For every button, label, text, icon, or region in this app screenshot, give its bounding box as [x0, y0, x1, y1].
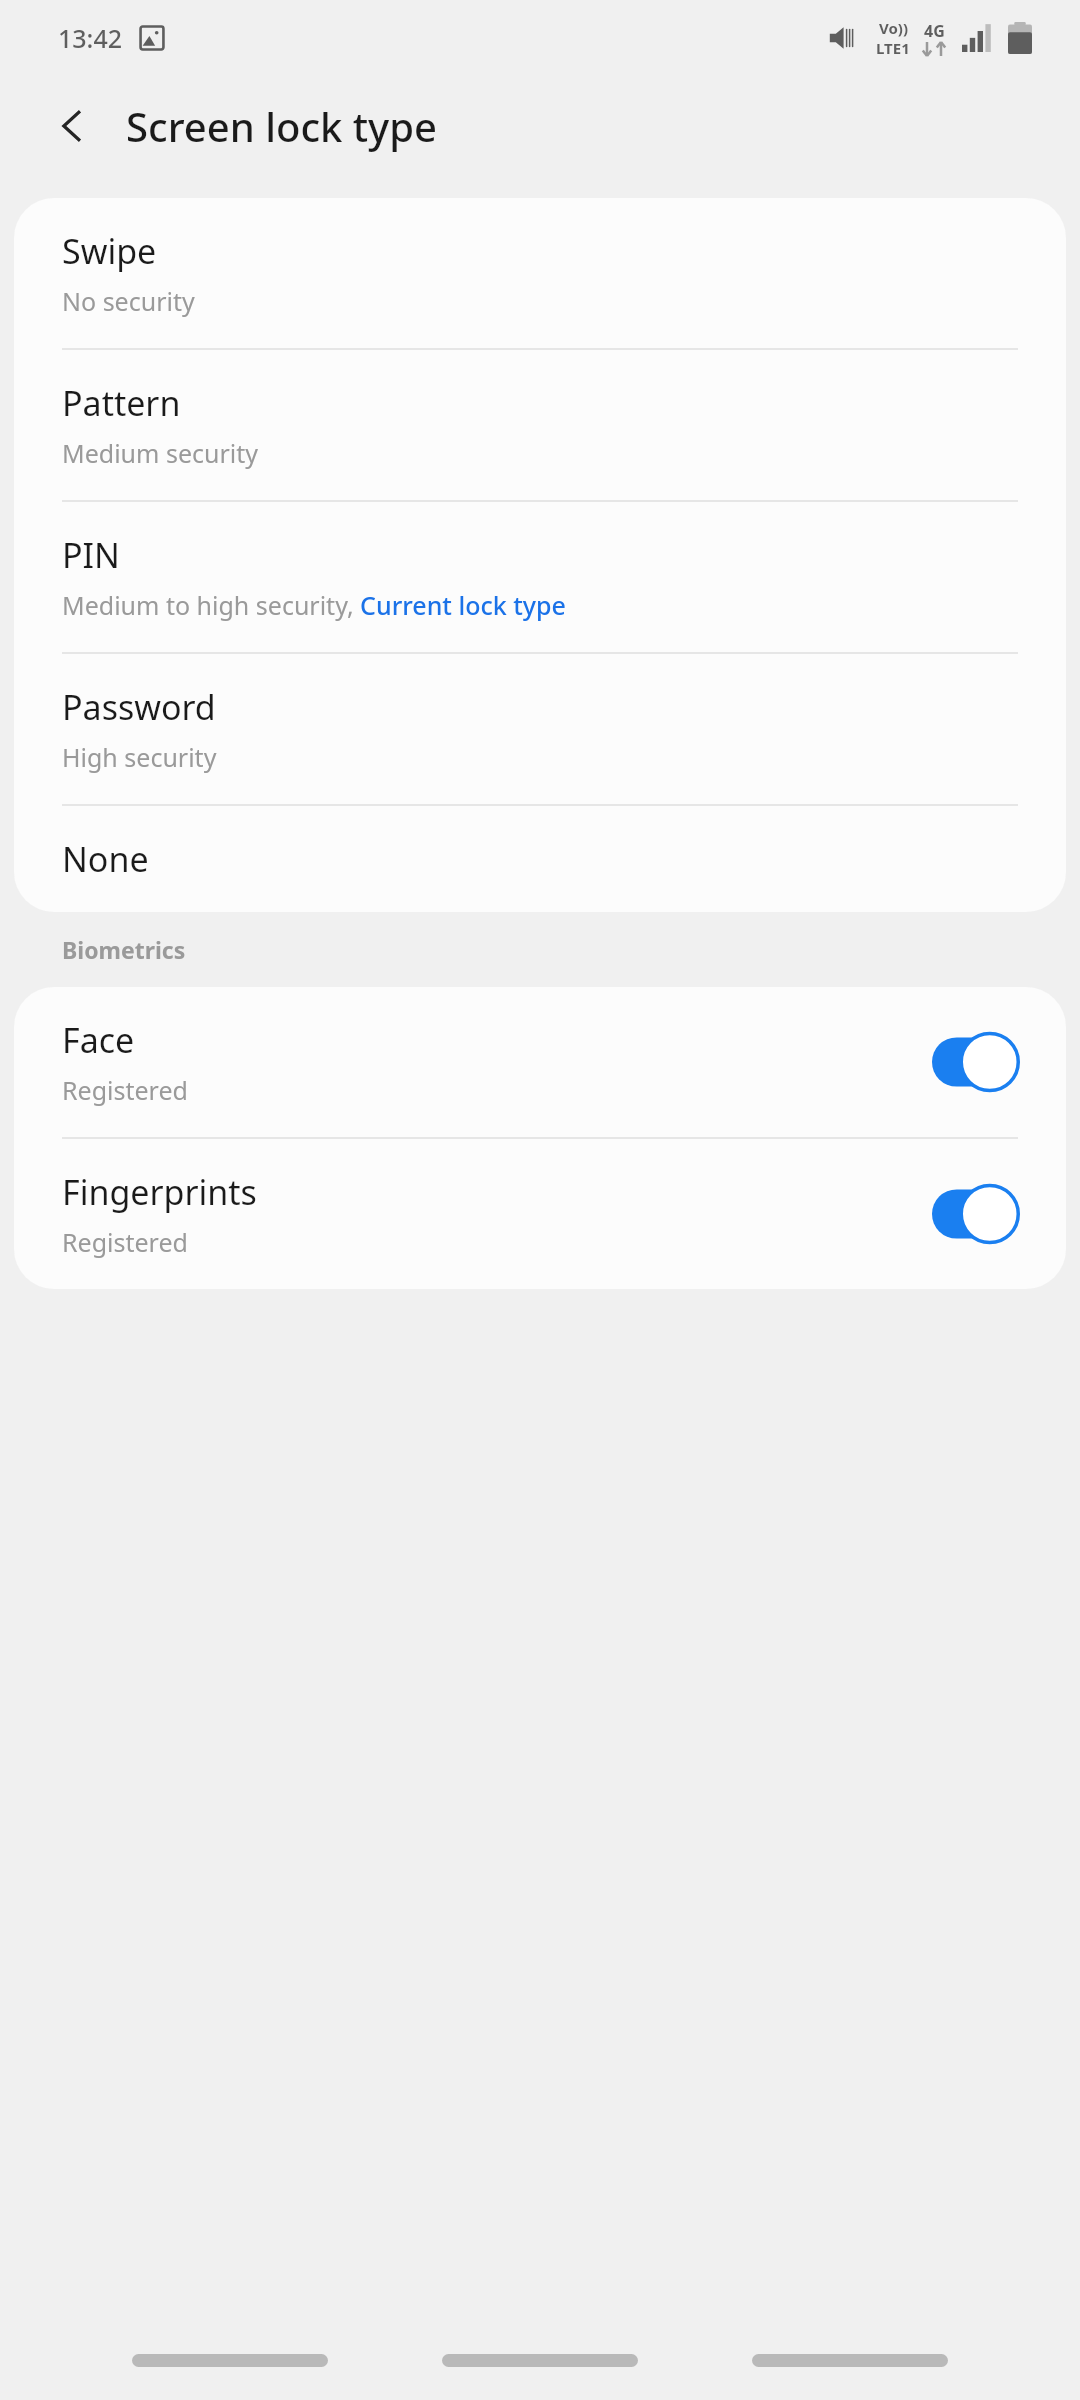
staticText: Screen lock type: [126, 99, 437, 153]
staticText: Vo)): [879, 18, 908, 38]
button[interactable]: Pattern: [14, 350, 1066, 500]
staticText: 4G: [924, 20, 945, 42]
staticText: Face: [62, 1017, 135, 1063]
staticText: Pattern: [62, 380, 181, 426]
button[interactable]: Face: [14, 987, 1066, 1137]
staticText: Registered: [62, 1073, 188, 1107]
button[interactable]: Toggle: [932, 1032, 1018, 1092]
button[interactable]: Swipe: [14, 198, 1066, 348]
button[interactable]: Back: [36, 90, 108, 162]
staticText: Fingerprints: [62, 1169, 257, 1215]
staticText: None: [62, 836, 149, 882]
staticText: Registered: [62, 1225, 188, 1259]
staticText: Medium to high security, Current lock ty…: [62, 588, 566, 622]
button[interactable]: Fingerprints: [14, 1139, 1066, 1289]
button[interactable]: Toggle: [932, 1184, 1018, 1244]
button[interactable]: None: [14, 806, 1066, 912]
button[interactable]: Nav: [440, 2338, 640, 2382]
button[interactable]: Nav: [750, 2338, 950, 2382]
staticText: Swipe: [62, 228, 157, 274]
staticText: High security: [62, 740, 217, 774]
staticText: PIN: [62, 532, 120, 578]
staticText: No security: [62, 284, 195, 318]
staticText: Password: [62, 684, 216, 730]
staticText: Biometrics: [62, 934, 186, 965]
button[interactable]: Password: [14, 654, 1066, 804]
button[interactable]: Nav: [130, 2338, 330, 2382]
staticText: LTE1: [876, 38, 910, 58]
staticText: 13:42: [58, 21, 123, 55]
button[interactable]: PIN: [14, 502, 1066, 652]
staticText: Medium security: [62, 436, 259, 470]
